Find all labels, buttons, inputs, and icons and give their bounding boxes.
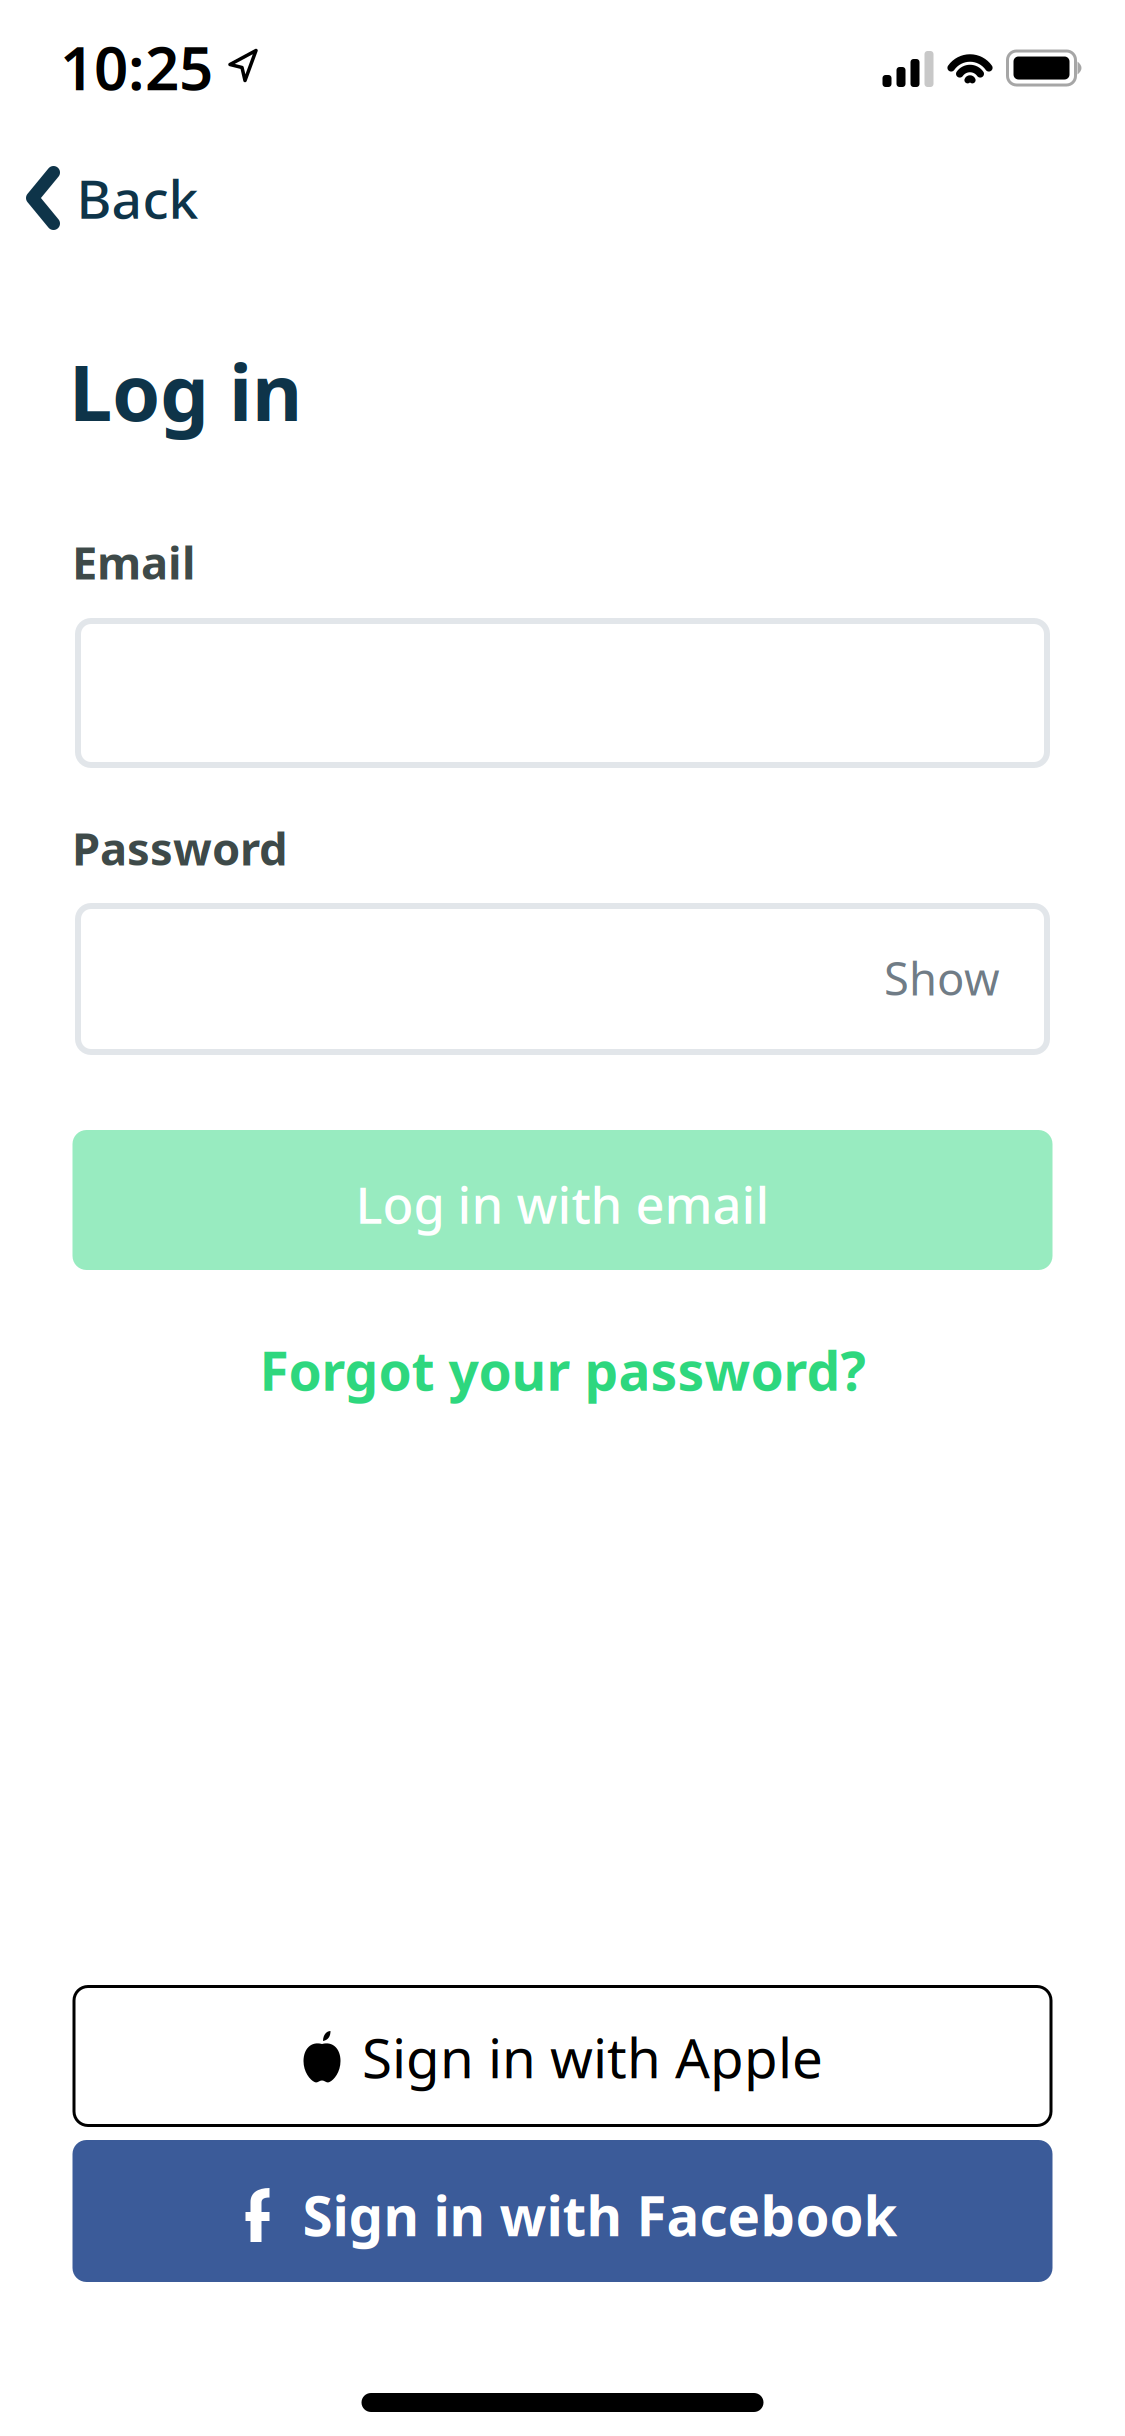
button[interactable]: Password [78, 906, 1047, 1052]
button[interactable]: Show [700, 948, 1000, 1008]
staticText: Log in [69, 340, 302, 442]
staticText: Log in with email [355, 1170, 769, 1238]
button[interactable]: Sign in with Apple [72, 1985, 1052, 2127]
staticText: Show [884, 948, 1000, 1008]
button[interactable]: Forgot your password? [259, 1335, 865, 1405]
staticText: Sign in with Apple [362, 2021, 823, 2093]
button[interactable]: Email [78, 621, 1047, 765]
staticText: Email [72, 532, 196, 592]
button[interactable]: Sign in with Facebook [72, 2140, 1052, 2282]
staticText: Forgot your password? [259, 1335, 865, 1405]
button[interactable]: Log in with email [72, 1130, 1052, 1270]
staticText: Sign in with Facebook [302, 2179, 897, 2251]
staticText: Password [72, 818, 288, 878]
staticText: Back [76, 163, 198, 233]
staticText: 10:25 [60, 27, 213, 107]
button[interactable]: Back [25, 163, 198, 233]
